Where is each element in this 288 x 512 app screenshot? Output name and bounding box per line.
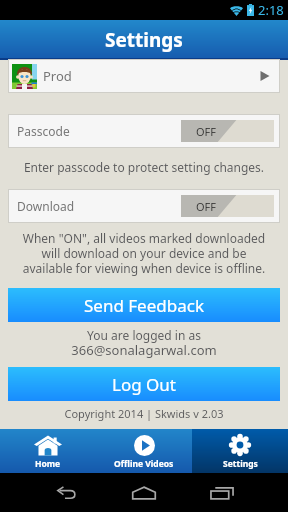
button[interactable]: Offline Videos (96, 429, 192, 473)
button[interactable]: Log Out (8, 367, 280, 401)
staticText: Send Feedback (84, 294, 204, 317)
staticText: 366@sonalagarwal.com (0, 341, 288, 359)
staticText: OFF (196, 199, 217, 214)
staticText: Settings (223, 458, 258, 470)
button[interactable]: Send Feedback (8, 288, 280, 322)
button[interactable]: Recents (192, 473, 252, 512)
button[interactable]: Download (9, 190, 279, 222)
staticText: Prod (43, 67, 72, 85)
staticText: Enter passcode to protect setting change… (4, 159, 284, 175)
staticText: When "ON", all videos marked downloaded … (2, 230, 286, 276)
staticText: Copyright 2014 | Skwids v 2.03 (0, 406, 288, 421)
button[interactable]: Back (36, 473, 96, 512)
staticText: You are logged in as (0, 327, 288, 343)
staticText: Download (17, 198, 75, 214)
staticText: OFF (196, 124, 217, 139)
button[interactable]: Passcode (9, 115, 279, 147)
staticText: Settings (105, 27, 183, 53)
staticText: Offline Videos (114, 458, 174, 470)
button[interactable]: Home (114, 473, 174, 512)
staticText: Home (35, 458, 61, 470)
staticText: 2:18 (258, 1, 284, 19)
button[interactable]: Home (0, 429, 96, 473)
button[interactable]: Prod (9, 60, 279, 92)
staticText: Log Out (112, 373, 176, 396)
button[interactable]: Settings (192, 429, 288, 473)
staticText: Passcode (17, 123, 70, 139)
